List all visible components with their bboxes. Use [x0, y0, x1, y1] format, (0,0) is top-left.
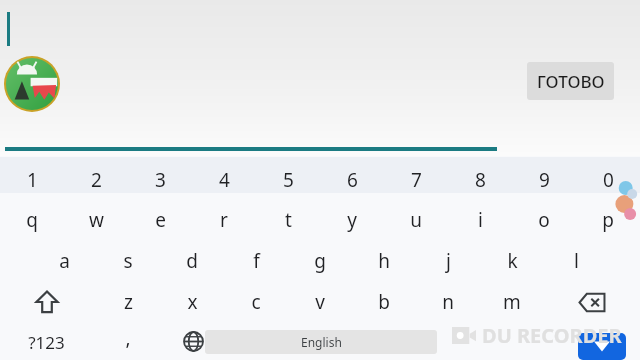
button[interactable]: Enter [578, 333, 626, 360]
button[interactable]: ГОТОВО [527, 62, 614, 100]
staticText: 9 [539, 167, 550, 193]
button[interactable]: u [376, 198, 456, 242]
staticText: a [59, 248, 70, 274]
button[interactable]: b [344, 280, 424, 324]
button[interactable]: Shift [17, 280, 77, 324]
button[interactable]: j [408, 239, 488, 283]
button[interactable]: w [56, 198, 136, 242]
button[interactable]: v [280, 280, 360, 324]
staticText: k [507, 248, 518, 274]
staticText: 6 [347, 167, 358, 193]
button[interactable]: Change language [168, 322, 218, 360]
button[interactable]: d [152, 239, 232, 283]
staticText: z [124, 289, 133, 315]
button[interactable]: 0 [568, 158, 640, 202]
button[interactable]: 4 [184, 158, 264, 202]
button[interactable]: n [408, 280, 488, 324]
staticText: j [446, 248, 451, 274]
staticText: 7 [411, 167, 422, 193]
button[interactable]: p [568, 198, 640, 242]
staticText: 8 [475, 167, 486, 193]
staticText: 3 [155, 167, 166, 193]
staticText: 0 [603, 167, 614, 193]
button[interactable]: App icon [4, 56, 60, 112]
staticText: l [574, 248, 579, 274]
button[interactable]: q [0, 198, 72, 242]
button[interactable]: r [184, 198, 264, 242]
staticText: 4 [219, 167, 230, 193]
staticText: DU RECORDER [482, 322, 622, 349]
button[interactable]: 8 [440, 158, 520, 202]
button[interactable]: t [248, 198, 328, 242]
staticText: o [538, 207, 550, 233]
staticText: p [602, 207, 614, 233]
staticText: English [301, 334, 342, 350]
staticText: ГОТОВО [537, 70, 605, 93]
button[interactable]: 7 [376, 158, 456, 202]
button[interactable]: y [312, 198, 392, 242]
button[interactable]: k [472, 239, 552, 283]
staticText: d [186, 248, 198, 274]
staticText: i [478, 207, 483, 233]
staticText: t [285, 207, 292, 233]
button[interactable]: ?123 [6, 320, 86, 360]
staticText: ?123 [28, 331, 65, 354]
staticText: s [123, 248, 133, 274]
button[interactable]: 2 [56, 158, 136, 202]
button[interactable]: 3 [120, 158, 200, 202]
button[interactable]: English [205, 330, 437, 354]
button[interactable]: f [216, 239, 296, 283]
staticText: 1 [27, 167, 38, 193]
button[interactable]: l [536, 239, 616, 283]
button[interactable]: Backspace [562, 280, 622, 324]
staticText: m [503, 289, 521, 315]
button[interactable]: , [88, 316, 168, 360]
staticText: x [187, 289, 198, 315]
button[interactable]: g [280, 239, 360, 283]
button[interactable]: s [88, 239, 168, 283]
button[interactable]: e [120, 198, 200, 242]
button[interactable]: i [440, 198, 520, 242]
button[interactable]: o [504, 198, 584, 242]
button[interactable]: 5 [248, 158, 328, 202]
staticText: e [155, 207, 166, 233]
staticText: v [315, 289, 325, 315]
staticText: q [26, 207, 38, 233]
button[interactable]: 1 [0, 158, 72, 202]
staticText: b [378, 289, 390, 315]
staticText: 2 [91, 167, 102, 193]
staticText: , [125, 325, 131, 351]
button[interactable]: 6 [312, 158, 392, 202]
button[interactable]: z [88, 280, 168, 324]
staticText: r [220, 207, 228, 233]
staticText: h [378, 248, 390, 274]
staticText: f [253, 248, 260, 274]
button[interactable]: x [152, 280, 232, 324]
button[interactable]: 9 [504, 158, 584, 202]
staticText: y [347, 207, 357, 233]
staticText: n [442, 289, 454, 315]
button[interactable]: c [216, 280, 296, 324]
staticText: g [314, 248, 326, 274]
button[interactable]: h [344, 239, 424, 283]
staticText: w [89, 207, 104, 233]
staticText: 5 [283, 167, 294, 193]
staticText: u [410, 207, 422, 233]
button[interactable]: m [472, 280, 552, 324]
button[interactable]: a [24, 239, 104, 283]
staticText: c [251, 289, 261, 315]
